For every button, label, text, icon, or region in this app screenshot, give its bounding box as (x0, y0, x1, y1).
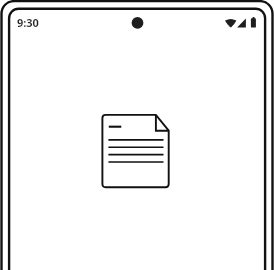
button[interactable]: Document (102, 114, 170, 188)
